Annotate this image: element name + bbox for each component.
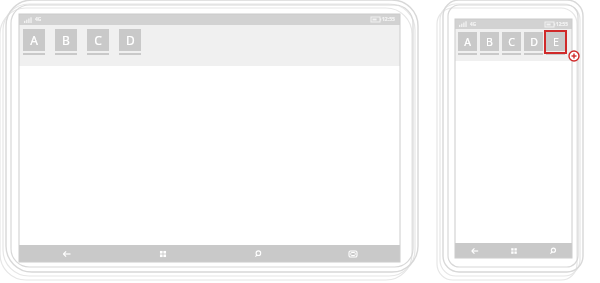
button[interactable]: Search	[533, 243, 572, 258]
button[interactable]: Start	[115, 245, 210, 262]
button[interactable]: Add tab	[568, 50, 580, 62]
button[interactable]: Back	[455, 243, 494, 258]
staticText: C	[508, 35, 515, 49]
staticText: B	[486, 35, 493, 49]
button[interactable]: D	[119, 29, 141, 55]
button[interactable]: Recent apps	[305, 245, 400, 262]
button[interactable]: Start	[494, 243, 533, 258]
button[interactable]: B	[55, 29, 77, 55]
staticText: 4G	[35, 16, 42, 23]
button[interactable]: A	[23, 29, 45, 55]
staticText: C	[94, 32, 102, 48]
button[interactable]: B	[480, 32, 499, 55]
staticText: 12:55	[556, 21, 568, 27]
button[interactable]: Search	[210, 245, 305, 262]
button[interactable]: C	[502, 32, 521, 55]
staticText: D	[126, 32, 135, 48]
staticText: A	[30, 32, 38, 48]
button[interactable]: D	[524, 32, 543, 55]
button[interactable]: E	[546, 32, 565, 55]
staticText: E	[553, 35, 559, 49]
button[interactable]: C	[87, 29, 109, 55]
staticText: 12:55	[382, 16, 395, 23]
staticText: B	[62, 32, 70, 48]
button[interactable]: A	[458, 32, 477, 55]
staticText: A	[464, 35, 471, 49]
staticText: 4G	[470, 21, 476, 27]
button[interactable]: Back	[19, 245, 115, 262]
staticText: D	[530, 35, 538, 49]
